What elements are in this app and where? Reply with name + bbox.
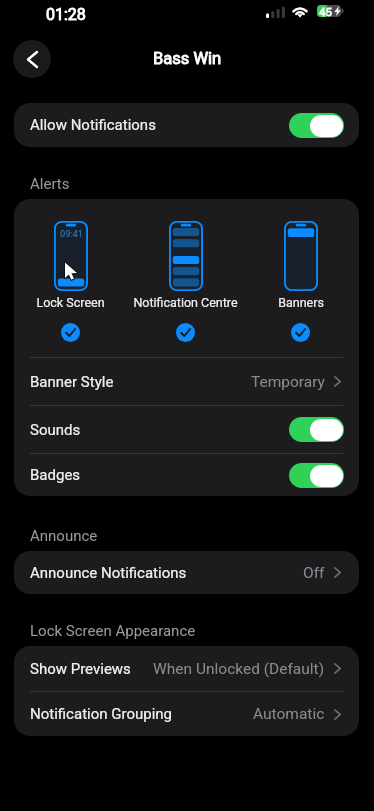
other: Selected xyxy=(291,323,310,342)
staticText: Announce Notifications xyxy=(30,564,187,582)
staticText: Show Previews xyxy=(30,660,131,678)
staticText: 45 xyxy=(319,5,332,17)
staticText: Lock Screen Appearance xyxy=(30,622,196,640)
other: Selected xyxy=(176,323,195,342)
staticText: Sounds xyxy=(30,421,81,439)
staticText: Notification Centre xyxy=(133,295,238,310)
staticText: Banners xyxy=(278,295,324,310)
staticText: Announce xyxy=(30,527,98,545)
staticText: Temporary xyxy=(251,373,325,391)
staticText: Alerts xyxy=(30,175,70,193)
button[interactable]: Banners xyxy=(243,199,358,357)
staticText: 01:28 xyxy=(46,5,86,24)
button[interactable]: Badges xyxy=(14,454,359,496)
button[interactable]: Notification Centre xyxy=(128,199,243,357)
staticText: Badges xyxy=(30,466,81,484)
button[interactable]: Sounds xyxy=(14,406,359,453)
staticText: Allow Notifications xyxy=(30,116,156,134)
button[interactable]: 09:41 xyxy=(14,199,128,357)
staticText: When Unlocked (Default) xyxy=(153,660,325,678)
staticText: Notification Grouping xyxy=(30,705,173,723)
staticText: Automatic xyxy=(253,705,325,723)
button[interactable]: Toggle xyxy=(289,113,344,138)
button[interactable]: Announce Notifications xyxy=(14,551,359,594)
staticText: Banner Style xyxy=(30,373,114,391)
other: Selected xyxy=(61,323,80,342)
button[interactable]: Notification Grouping xyxy=(14,692,359,736)
button[interactable]: Toggle xyxy=(289,417,344,442)
button[interactable]: Banner Style xyxy=(14,358,359,405)
button[interactable]: Show Previews xyxy=(14,646,359,691)
staticText: Off xyxy=(303,564,325,582)
button[interactable]: Allow Notifications xyxy=(14,103,359,147)
staticText: Bass Win xyxy=(153,49,222,68)
button[interactable]: Back xyxy=(13,40,51,78)
button[interactable]: Toggle xyxy=(289,463,344,488)
staticText: Lock Screen xyxy=(36,295,105,310)
staticText: 09:41 xyxy=(60,228,83,239)
